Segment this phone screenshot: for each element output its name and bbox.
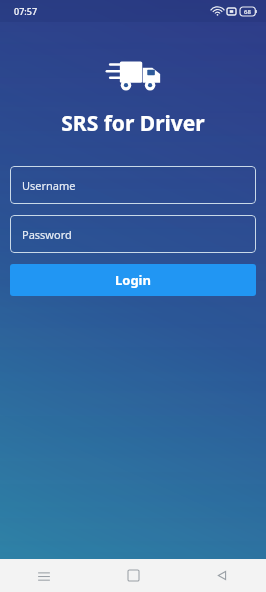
staticText: Login [115,271,151,289]
button[interactable]: Login [10,264,256,296]
button[interactable]: Recent apps [21,559,67,592]
staticText: Username [22,178,76,193]
button[interactable]: Home [110,559,156,592]
button[interactable]: Password [10,215,256,253]
button[interactable]: Back [199,559,245,592]
button[interactable]: Username [10,166,256,204]
staticText: 68 [244,8,251,16]
staticText: Password [22,227,72,242]
staticText: SRS for Driver [0,109,266,138]
staticText: 07:57 [14,5,38,17]
